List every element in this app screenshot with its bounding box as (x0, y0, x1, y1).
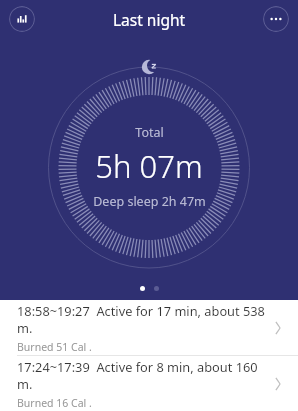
staticText: Total (135, 124, 164, 141)
staticText: Last night (113, 9, 186, 30)
staticText: Deep sleep 2h 47m (93, 193, 206, 210)
button[interactable]: 17:24~17:39 Active for 8 min, about 160 … (0, 356, 298, 411)
button[interactable]: More options (263, 6, 289, 32)
staticText: Burned 16 Cal . (17, 396, 92, 410)
staticText: 18:58~19:27 Active for 17 min, about 538… (17, 302, 270, 336)
button[interactable]: Statistics (9, 6, 35, 32)
button[interactable]: 18:58~19:27 Active for 17 min, about 538… (0, 300, 298, 355)
staticText: Burned 51 Cal . (17, 340, 92, 354)
staticText: 17:24~17:39 Active for 8 min, about 160 … (17, 358, 270, 392)
staticText: 5h 07m (95, 145, 203, 187)
